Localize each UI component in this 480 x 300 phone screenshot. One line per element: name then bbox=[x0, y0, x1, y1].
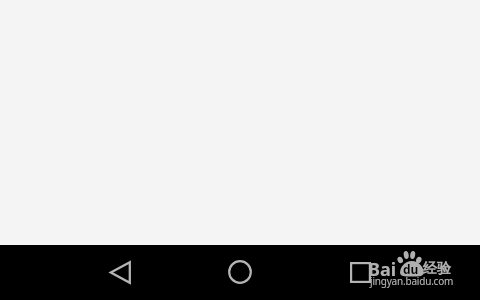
button[interactable]: Back bbox=[99, 252, 139, 292]
button[interactable]: Home bbox=[220, 252, 260, 292]
staticText: du bbox=[403, 261, 419, 277]
staticText: 经验 bbox=[423, 260, 451, 278]
staticText: jingyan.baidu.com bbox=[370, 274, 454, 288]
button[interactable]: Recent apps bbox=[340, 252, 380, 292]
staticText: Bai bbox=[368, 257, 397, 282]
